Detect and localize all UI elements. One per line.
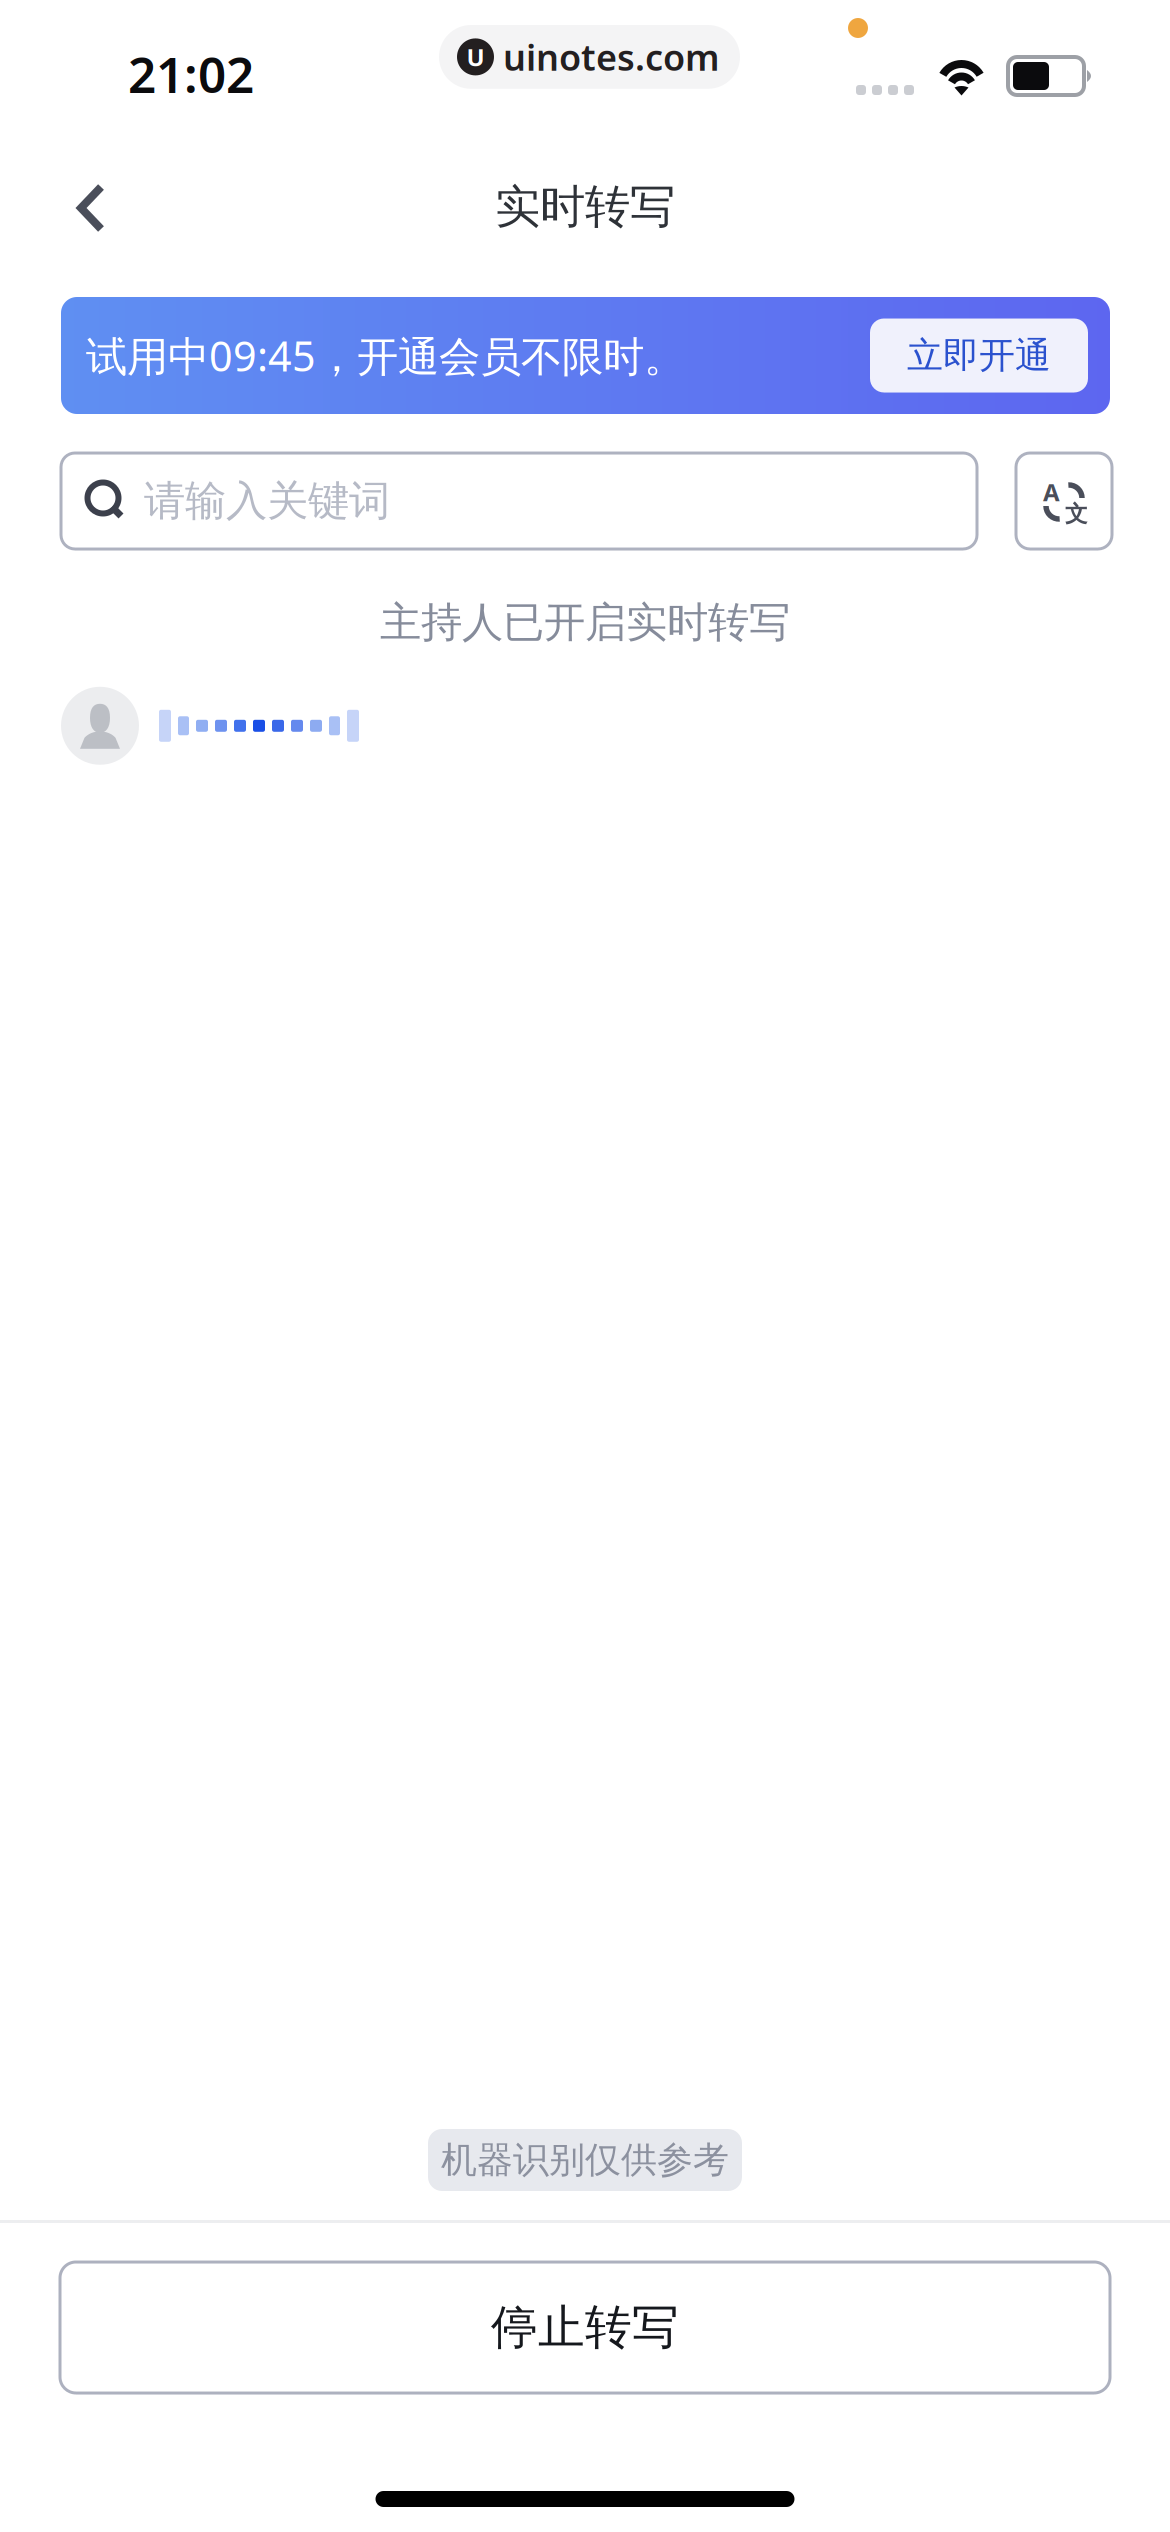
button[interactable]: 立即开通 bbox=[870, 318, 1088, 392]
staticText: U bbox=[466, 41, 484, 73]
staticText: 文 bbox=[1065, 500, 1088, 528]
staticText: 请输入关键词 bbox=[144, 476, 390, 526]
staticText: 机器识别仅供参考 bbox=[441, 2138, 729, 2182]
staticText: 实时转写 bbox=[495, 179, 675, 235]
button[interactable]: Translate bbox=[1016, 453, 1112, 549]
staticText: A bbox=[1043, 476, 1060, 508]
staticText: 停止转写 bbox=[491, 2299, 679, 2356]
staticText: 21:02 bbox=[128, 41, 254, 106]
button[interactable]: Back bbox=[36, 153, 146, 263]
staticText: uinotes.com bbox=[503, 33, 720, 81]
staticText: 主持人已开启实时转写 bbox=[380, 597, 790, 648]
staticText: 试用中09:45，开通会员不限时。 bbox=[86, 328, 685, 383]
staticText: 立即开通 bbox=[907, 333, 1051, 378]
button[interactable]: 停止转写 bbox=[60, 2262, 1110, 2393]
